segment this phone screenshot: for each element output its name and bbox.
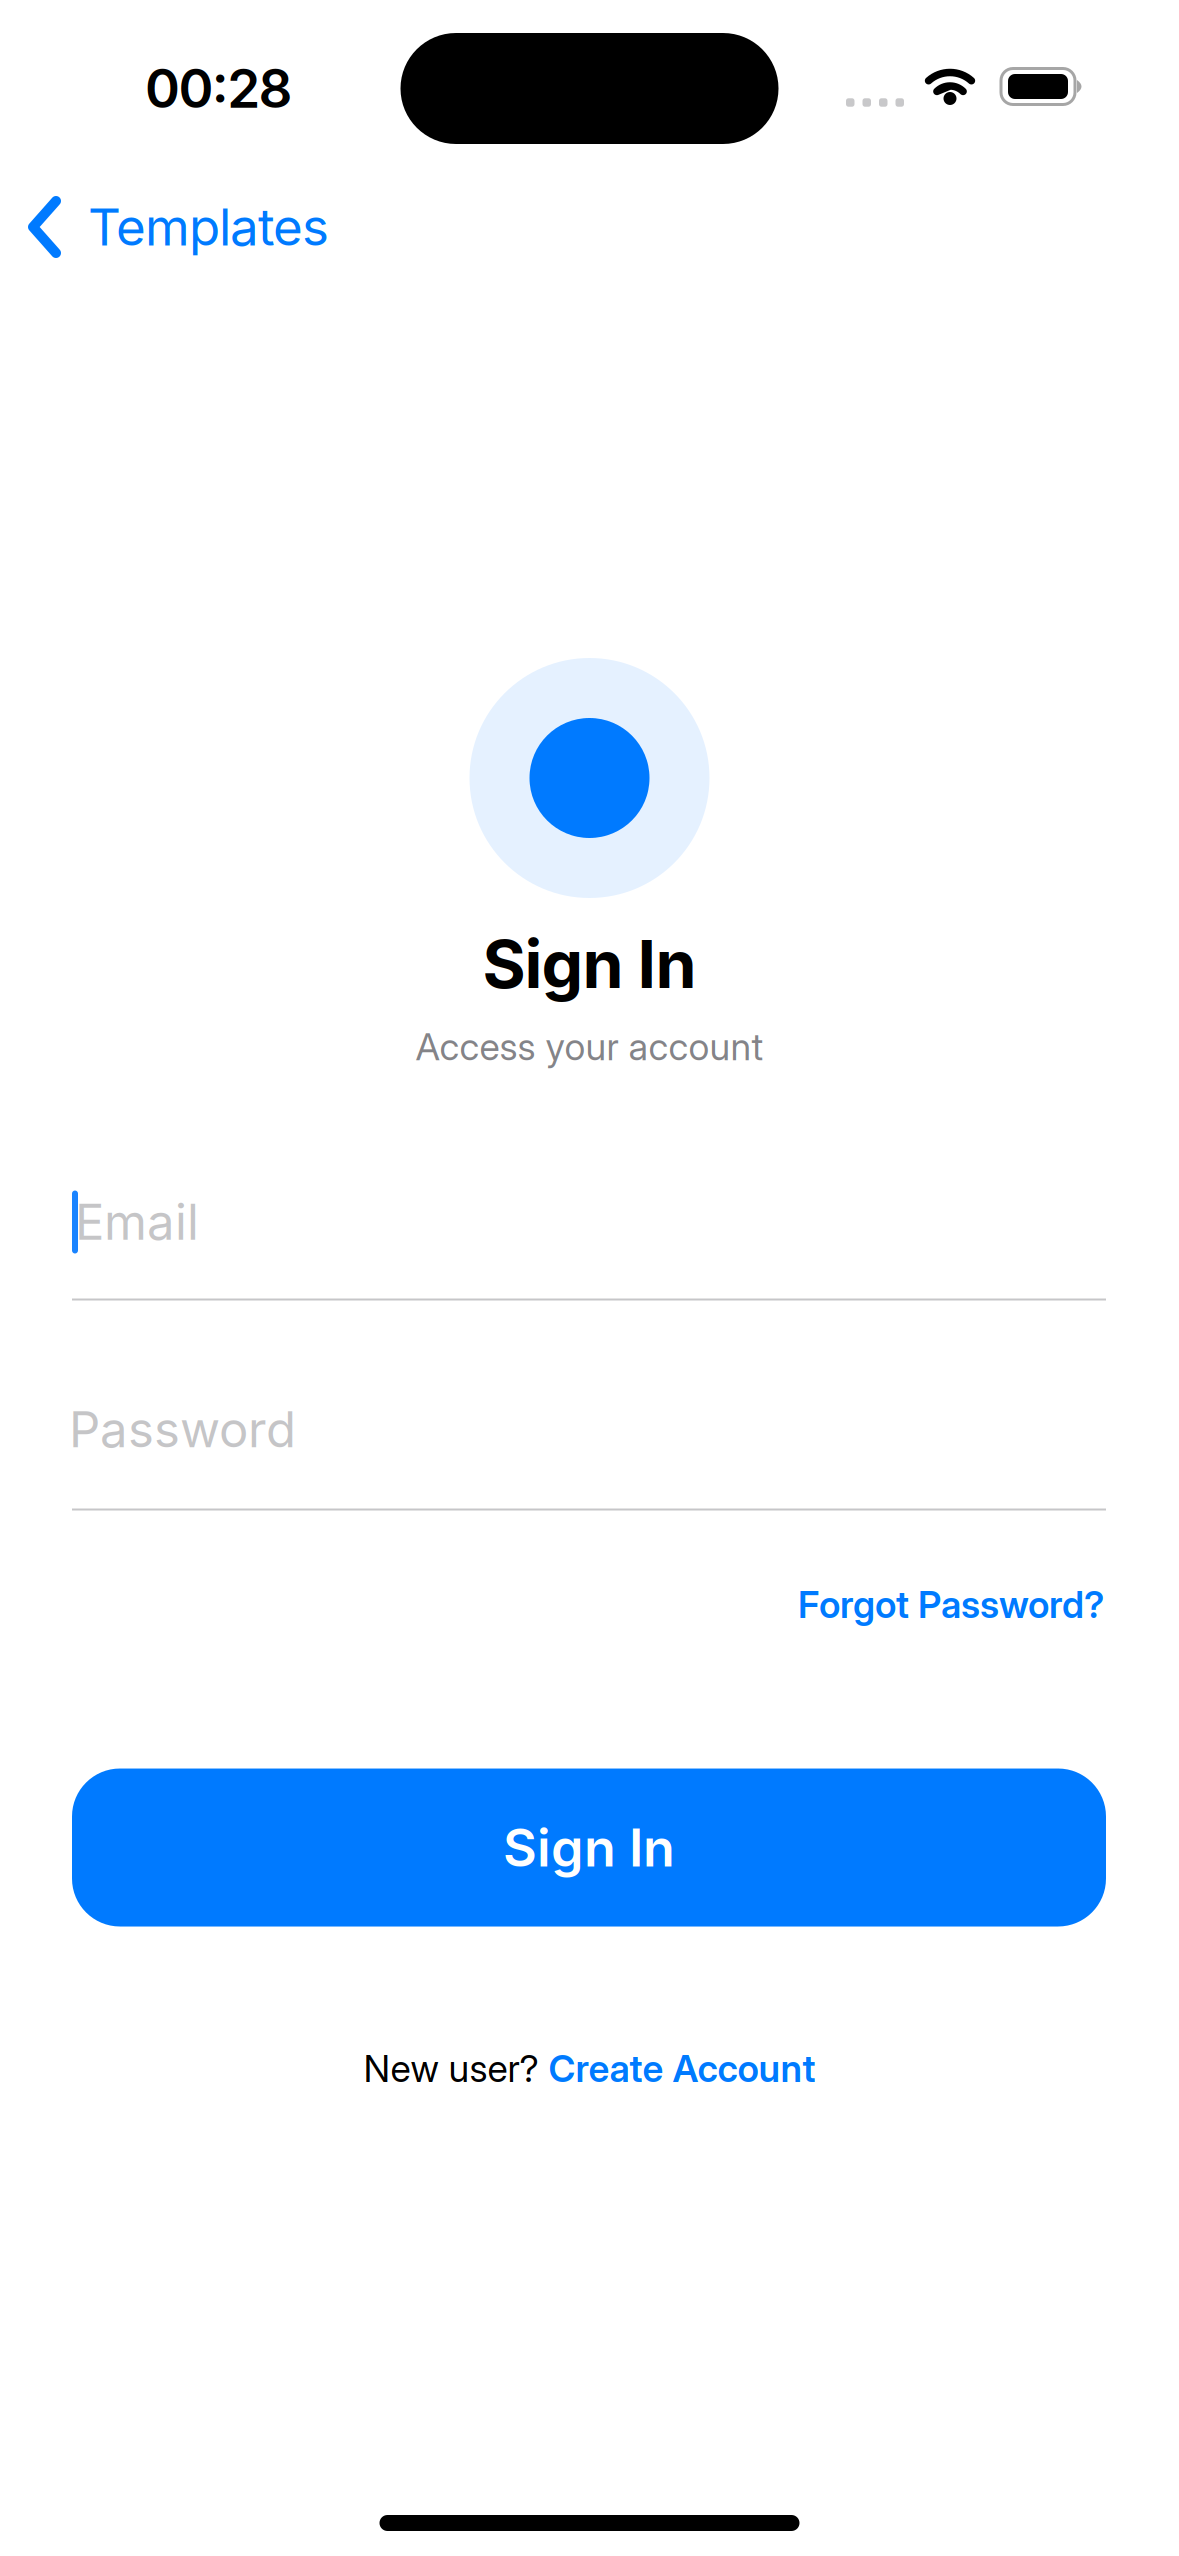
staticText: Sign In xyxy=(482,925,696,1003)
button[interactable]: Password xyxy=(0,1400,1179,1458)
button[interactable]: Sign In xyxy=(72,1768,1106,1926)
staticText: Create Account xyxy=(548,2047,815,2090)
button[interactable]: Forgot Password? xyxy=(798,1583,1104,1626)
button[interactable]: Templates xyxy=(28,196,329,258)
staticText: New user? xyxy=(363,2047,538,2090)
staticText: Email xyxy=(75,1193,199,1251)
staticText: 00:28 xyxy=(145,57,293,120)
button[interactable]: Email xyxy=(0,1190,1179,1253)
staticText: Sign In xyxy=(503,1817,675,1878)
staticText: Forgot Password? xyxy=(798,1583,1104,1626)
staticText: Password xyxy=(69,1401,296,1458)
staticText: Access your account xyxy=(415,1025,763,1068)
staticText: Templates xyxy=(88,197,329,257)
button[interactable]: Create Account xyxy=(548,2047,815,2090)
